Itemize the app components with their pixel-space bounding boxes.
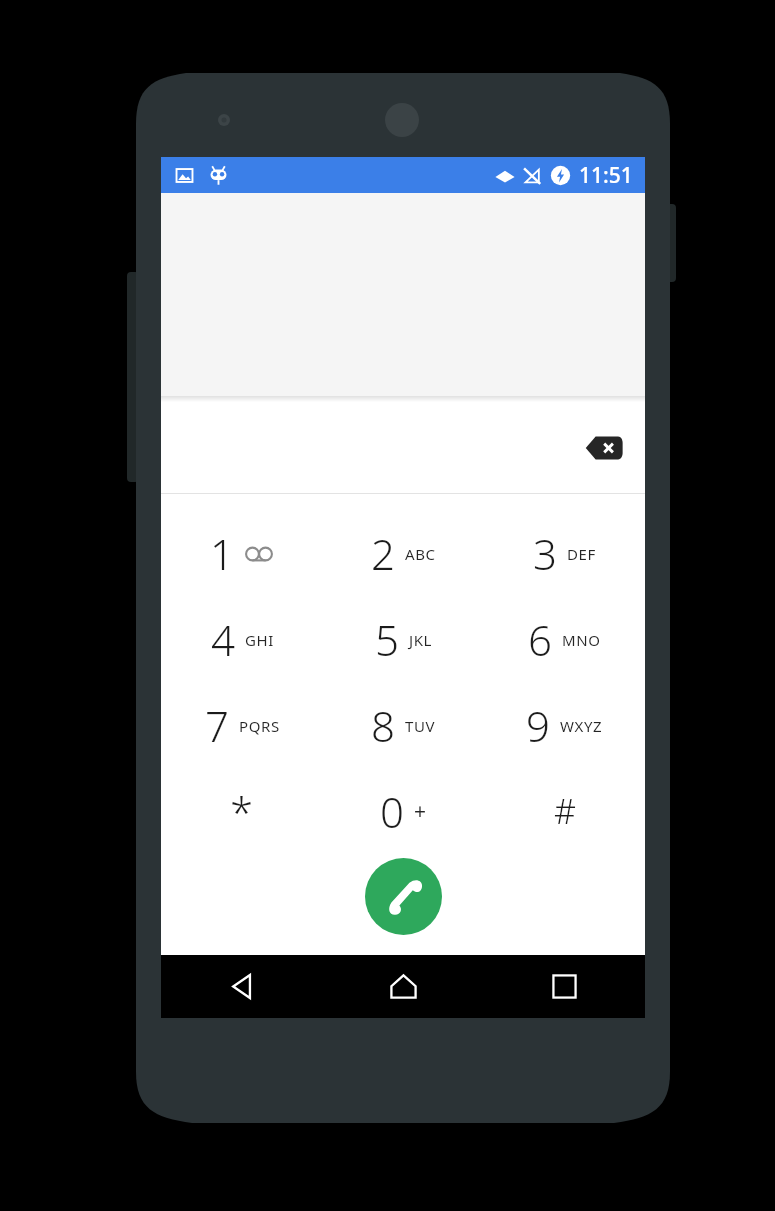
staticText: GHI bbox=[245, 630, 274, 650]
staticText: PQRS bbox=[239, 716, 280, 736]
button[interactable]: # bbox=[484, 768, 645, 854]
staticText: 9 bbox=[526, 697, 550, 754]
staticText: 11:51 bbox=[579, 161, 633, 190]
button[interactable]: 1 bbox=[161, 510, 323, 596]
button[interactable]: Recents bbox=[484, 955, 645, 1018]
staticText: 8 bbox=[371, 697, 395, 754]
button[interactable]: 6 bbox=[484, 596, 645, 682]
staticText: * bbox=[230, 783, 254, 840]
button[interactable]: * bbox=[161, 768, 323, 854]
staticText: 3 bbox=[533, 525, 557, 582]
button[interactable]: Home bbox=[323, 955, 484, 1018]
staticText: 6 bbox=[528, 611, 552, 668]
button[interactable]: Call bbox=[365, 858, 442, 935]
staticText: 5 bbox=[375, 611, 399, 668]
staticText: 7 bbox=[205, 697, 229, 754]
staticText: WXYZ bbox=[560, 716, 603, 736]
staticText: TUV bbox=[405, 716, 436, 736]
button[interactable]: 3 bbox=[484, 510, 645, 596]
staticText: 0 bbox=[380, 783, 404, 840]
button[interactable]: 9 bbox=[484, 682, 645, 768]
staticText: 4 bbox=[211, 611, 235, 668]
staticText: DEF bbox=[567, 544, 596, 564]
button[interactable]: 7 bbox=[161, 682, 323, 768]
staticText: MNO bbox=[562, 630, 601, 650]
button[interactable]: 4 bbox=[161, 596, 323, 682]
button[interactable]: 2 bbox=[323, 510, 484, 596]
button[interactable]: 0 bbox=[323, 768, 484, 854]
staticText: 1 bbox=[210, 525, 234, 582]
button[interactable]: 8 bbox=[323, 682, 484, 768]
staticText: # bbox=[554, 788, 576, 834]
button[interactable]: Backspace bbox=[575, 419, 633, 477]
staticText: ABC bbox=[405, 544, 436, 564]
button[interactable]: 5 bbox=[323, 596, 484, 682]
staticText: + bbox=[414, 797, 427, 826]
staticText: JKL bbox=[409, 630, 433, 650]
staticText: 2 bbox=[371, 525, 395, 582]
button[interactable]: Back bbox=[161, 955, 323, 1018]
